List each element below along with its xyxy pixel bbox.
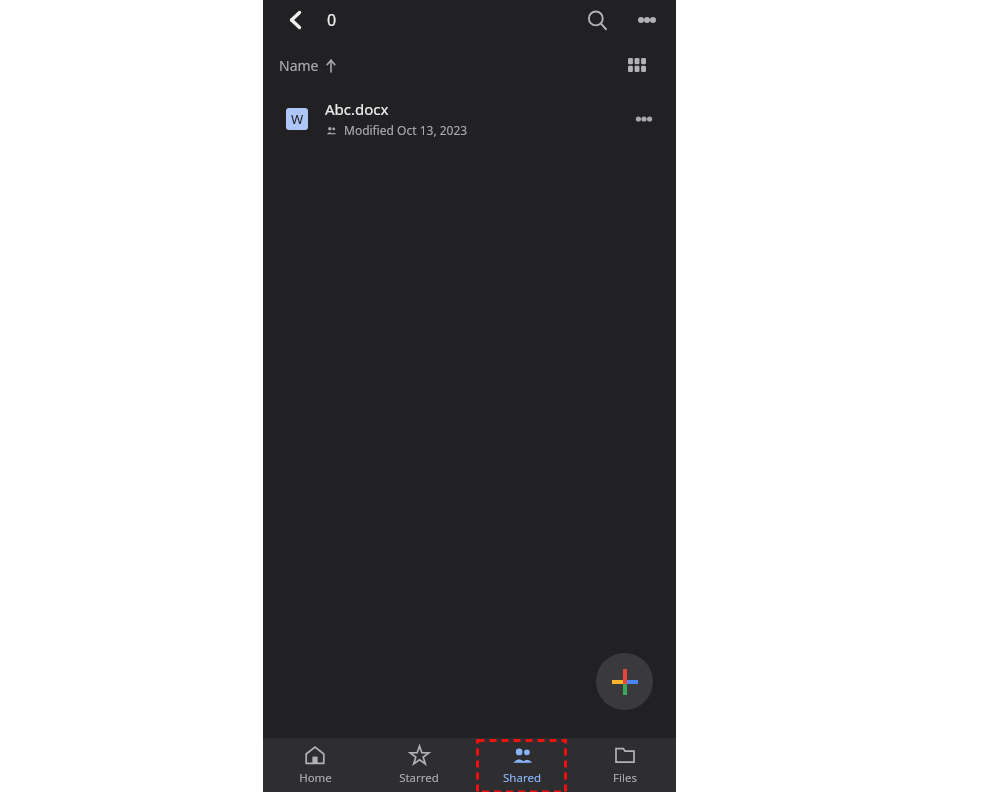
button[interactable]: W xyxy=(263,90,676,147)
staticText: Modified Oct 13, 2023 xyxy=(344,122,468,138)
staticText: Starred xyxy=(399,770,439,786)
button[interactable]: Grid view xyxy=(620,48,654,82)
staticText: Abc.docx xyxy=(325,99,389,119)
button[interactable]: Files xyxy=(573,738,676,792)
button[interactable]: Home xyxy=(263,738,367,792)
staticText: Name xyxy=(279,56,319,75)
staticText: Shared xyxy=(503,770,541,786)
button[interactable]: Create new xyxy=(596,653,653,710)
staticText: Home xyxy=(299,770,332,786)
button[interactable]: Back xyxy=(279,3,313,37)
staticText: Files xyxy=(613,770,637,786)
button[interactable]: Starred xyxy=(367,738,470,792)
button[interactable]: Search xyxy=(580,3,614,37)
staticText: 0 xyxy=(327,9,337,31)
button[interactable]: More options xyxy=(632,5,662,35)
staticText: W xyxy=(291,110,304,128)
button[interactable]: Shared xyxy=(470,738,573,792)
button[interactable]: File options xyxy=(628,103,660,135)
button[interactable]: Name xyxy=(273,52,344,79)
